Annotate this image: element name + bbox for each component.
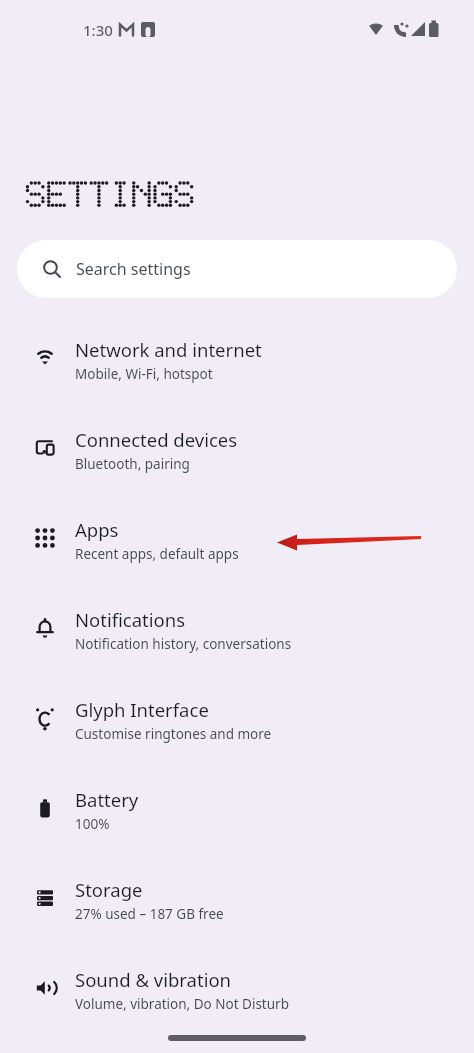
staticText: Network and internet [75, 337, 262, 362]
staticText: 100% [75, 815, 110, 833]
staticText: Volume, vibration, Do Not Disturb [75, 995, 289, 1013]
button[interactable]: Apps [0, 495, 474, 585]
staticText: Storage [75, 877, 143, 902]
staticText: Recent apps, default apps [75, 545, 239, 563]
button[interactable]: Connected devices [0, 405, 474, 495]
button[interactable]: Storage [0, 855, 474, 945]
staticText: Apps [75, 517, 119, 542]
button[interactable]: Network and internet [0, 315, 474, 405]
staticText: Notifications [75, 607, 186, 632]
staticText: Customise ringtones and more [75, 725, 272, 743]
staticText: Sound & vibration [75, 967, 232, 992]
staticText: Battery [75, 787, 139, 812]
staticText: Mobile, Wi-Fi, hotspot [75, 365, 213, 383]
staticText: 27% used – 187 GB free [75, 905, 224, 923]
staticText: Notification history, conversations [75, 635, 292, 653]
button[interactable]: Notifications [0, 585, 474, 675]
button[interactable]: Battery [0, 765, 474, 855]
button[interactable]: Glyph Interface [0, 675, 474, 765]
staticText: Bluetooth, pairing [75, 455, 190, 473]
staticText: Connected devices [75, 427, 238, 452]
button[interactable]: Search settings [17, 240, 457, 298]
staticText: Glyph Interface [75, 697, 209, 722]
staticText: 1:30 [83, 20, 113, 40]
staticText: Search settings [76, 258, 191, 280]
button[interactable]: Sound & vibration [0, 945, 474, 1035]
